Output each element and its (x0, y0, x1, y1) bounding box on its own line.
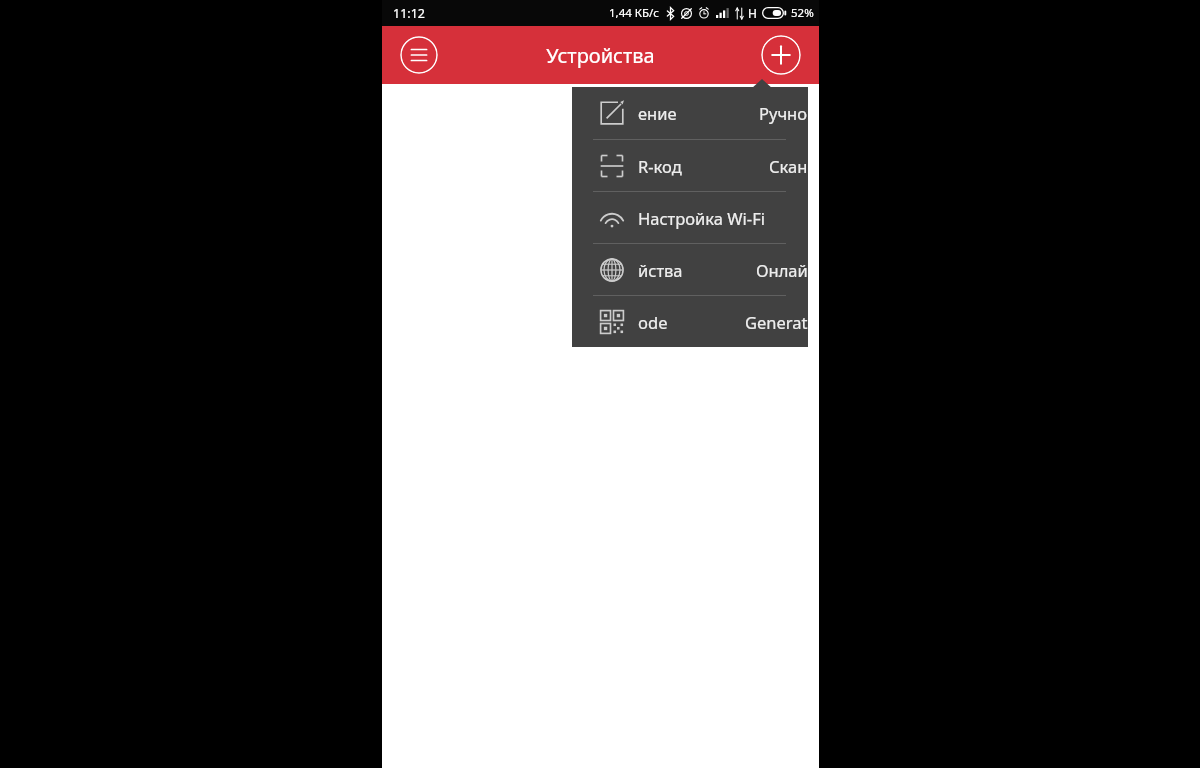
staticText: Настройка Wi-Fi (638, 207, 765, 229)
staticText: 1,44 КБ/с (609, 5, 660, 21)
button[interactable]: Настройка Wi-Fi (572, 192, 808, 243)
staticText: Устройства (546, 42, 655, 69)
staticText: 52% (791, 5, 814, 21)
button[interactable]: ение (572, 87, 808, 139)
staticText: ode (638, 311, 668, 333)
button[interactable]: R-код (572, 140, 808, 191)
staticText: Generat (745, 311, 808, 333)
staticText: йства (638, 259, 683, 281)
staticText: Ручно (759, 102, 808, 124)
button[interactable]: Add device (761, 35, 801, 75)
staticText: ение (638, 102, 677, 124)
staticText: Скан (769, 155, 808, 177)
button[interactable]: Open navigation menu (400, 36, 438, 74)
staticText: R-код (638, 155, 682, 177)
staticText: Онлай (756, 259, 808, 281)
staticText: H (748, 5, 757, 21)
staticText: 11:12 (393, 5, 425, 22)
button[interactable]: ode (572, 296, 808, 347)
button[interactable]: йства (572, 244, 808, 295)
